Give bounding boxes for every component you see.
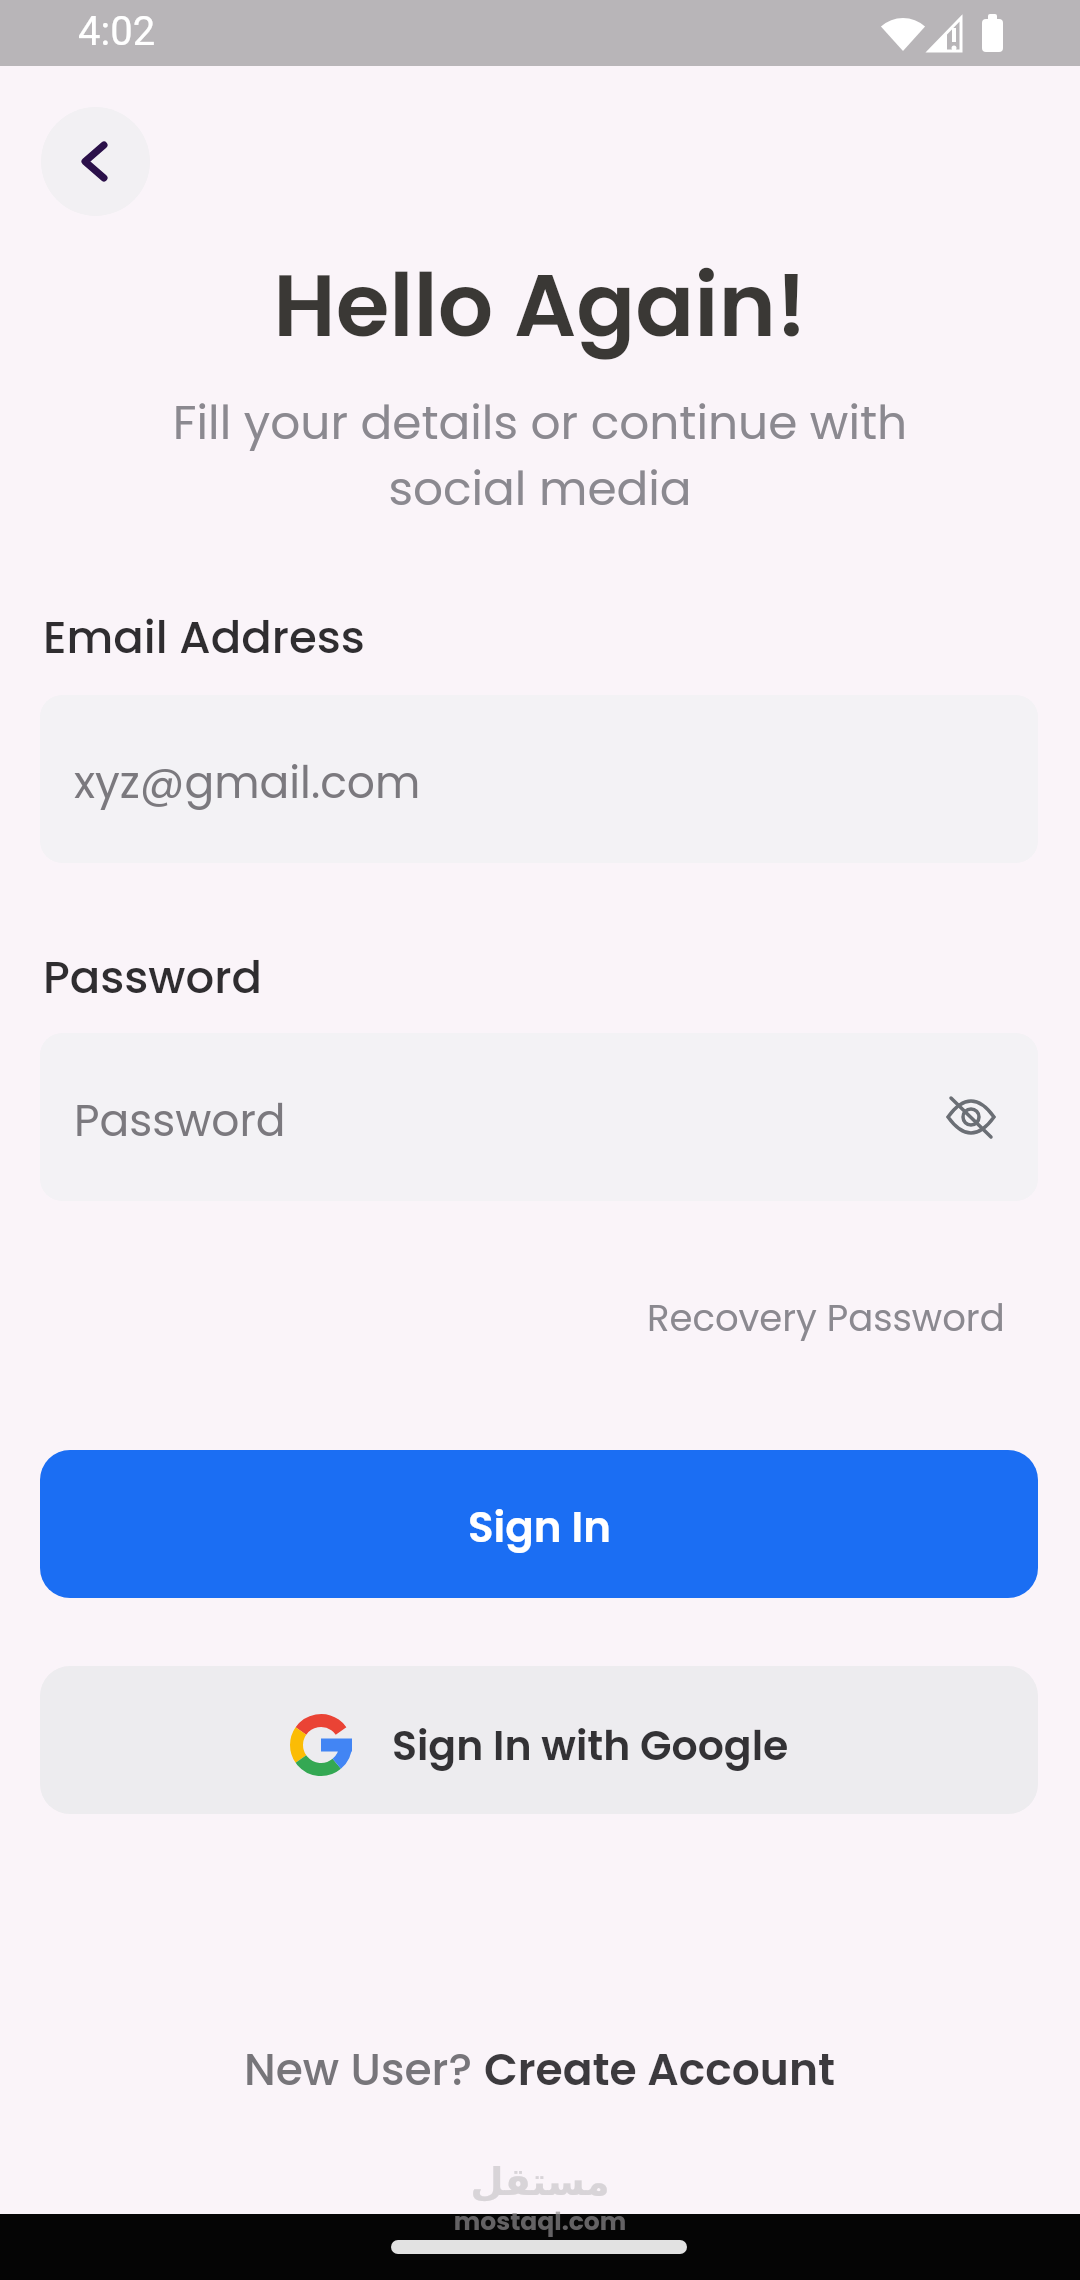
button[interactable]: New User? [244,2039,836,2101]
button[interactable] [41,107,150,216]
staticText: Recovery Password [647,1292,1005,1344]
staticText: mostaql.com [0,2204,1080,2239]
button[interactable]: Sign In with Google [40,1666,1038,1814]
staticText: Email Address [43,606,365,669]
staticText: Create Account [484,2039,836,2101]
staticText: Sign In [468,1498,611,1557]
staticText: Password [43,946,262,1009]
staticText: xyz@gmail.com [74,752,421,814]
button[interactable]: Password [40,1033,1038,1201]
staticText: Password [74,1090,286,1152]
button[interactable]: Recovery Password [647,1292,1005,1344]
staticText: Fill your details or continue with socia… [0,390,1080,522]
staticText: New User? [244,2039,484,2101]
staticText: Hello Again! [0,245,1080,367]
button[interactable]: Sign In [40,1450,1038,1598]
button[interactable]: xyz@gmail.com [40,695,1038,863]
staticText: Sign In with Google [392,1717,789,1774]
staticText: مستقل [0,2160,1080,2204]
staticText: 4:02 [78,8,156,55]
